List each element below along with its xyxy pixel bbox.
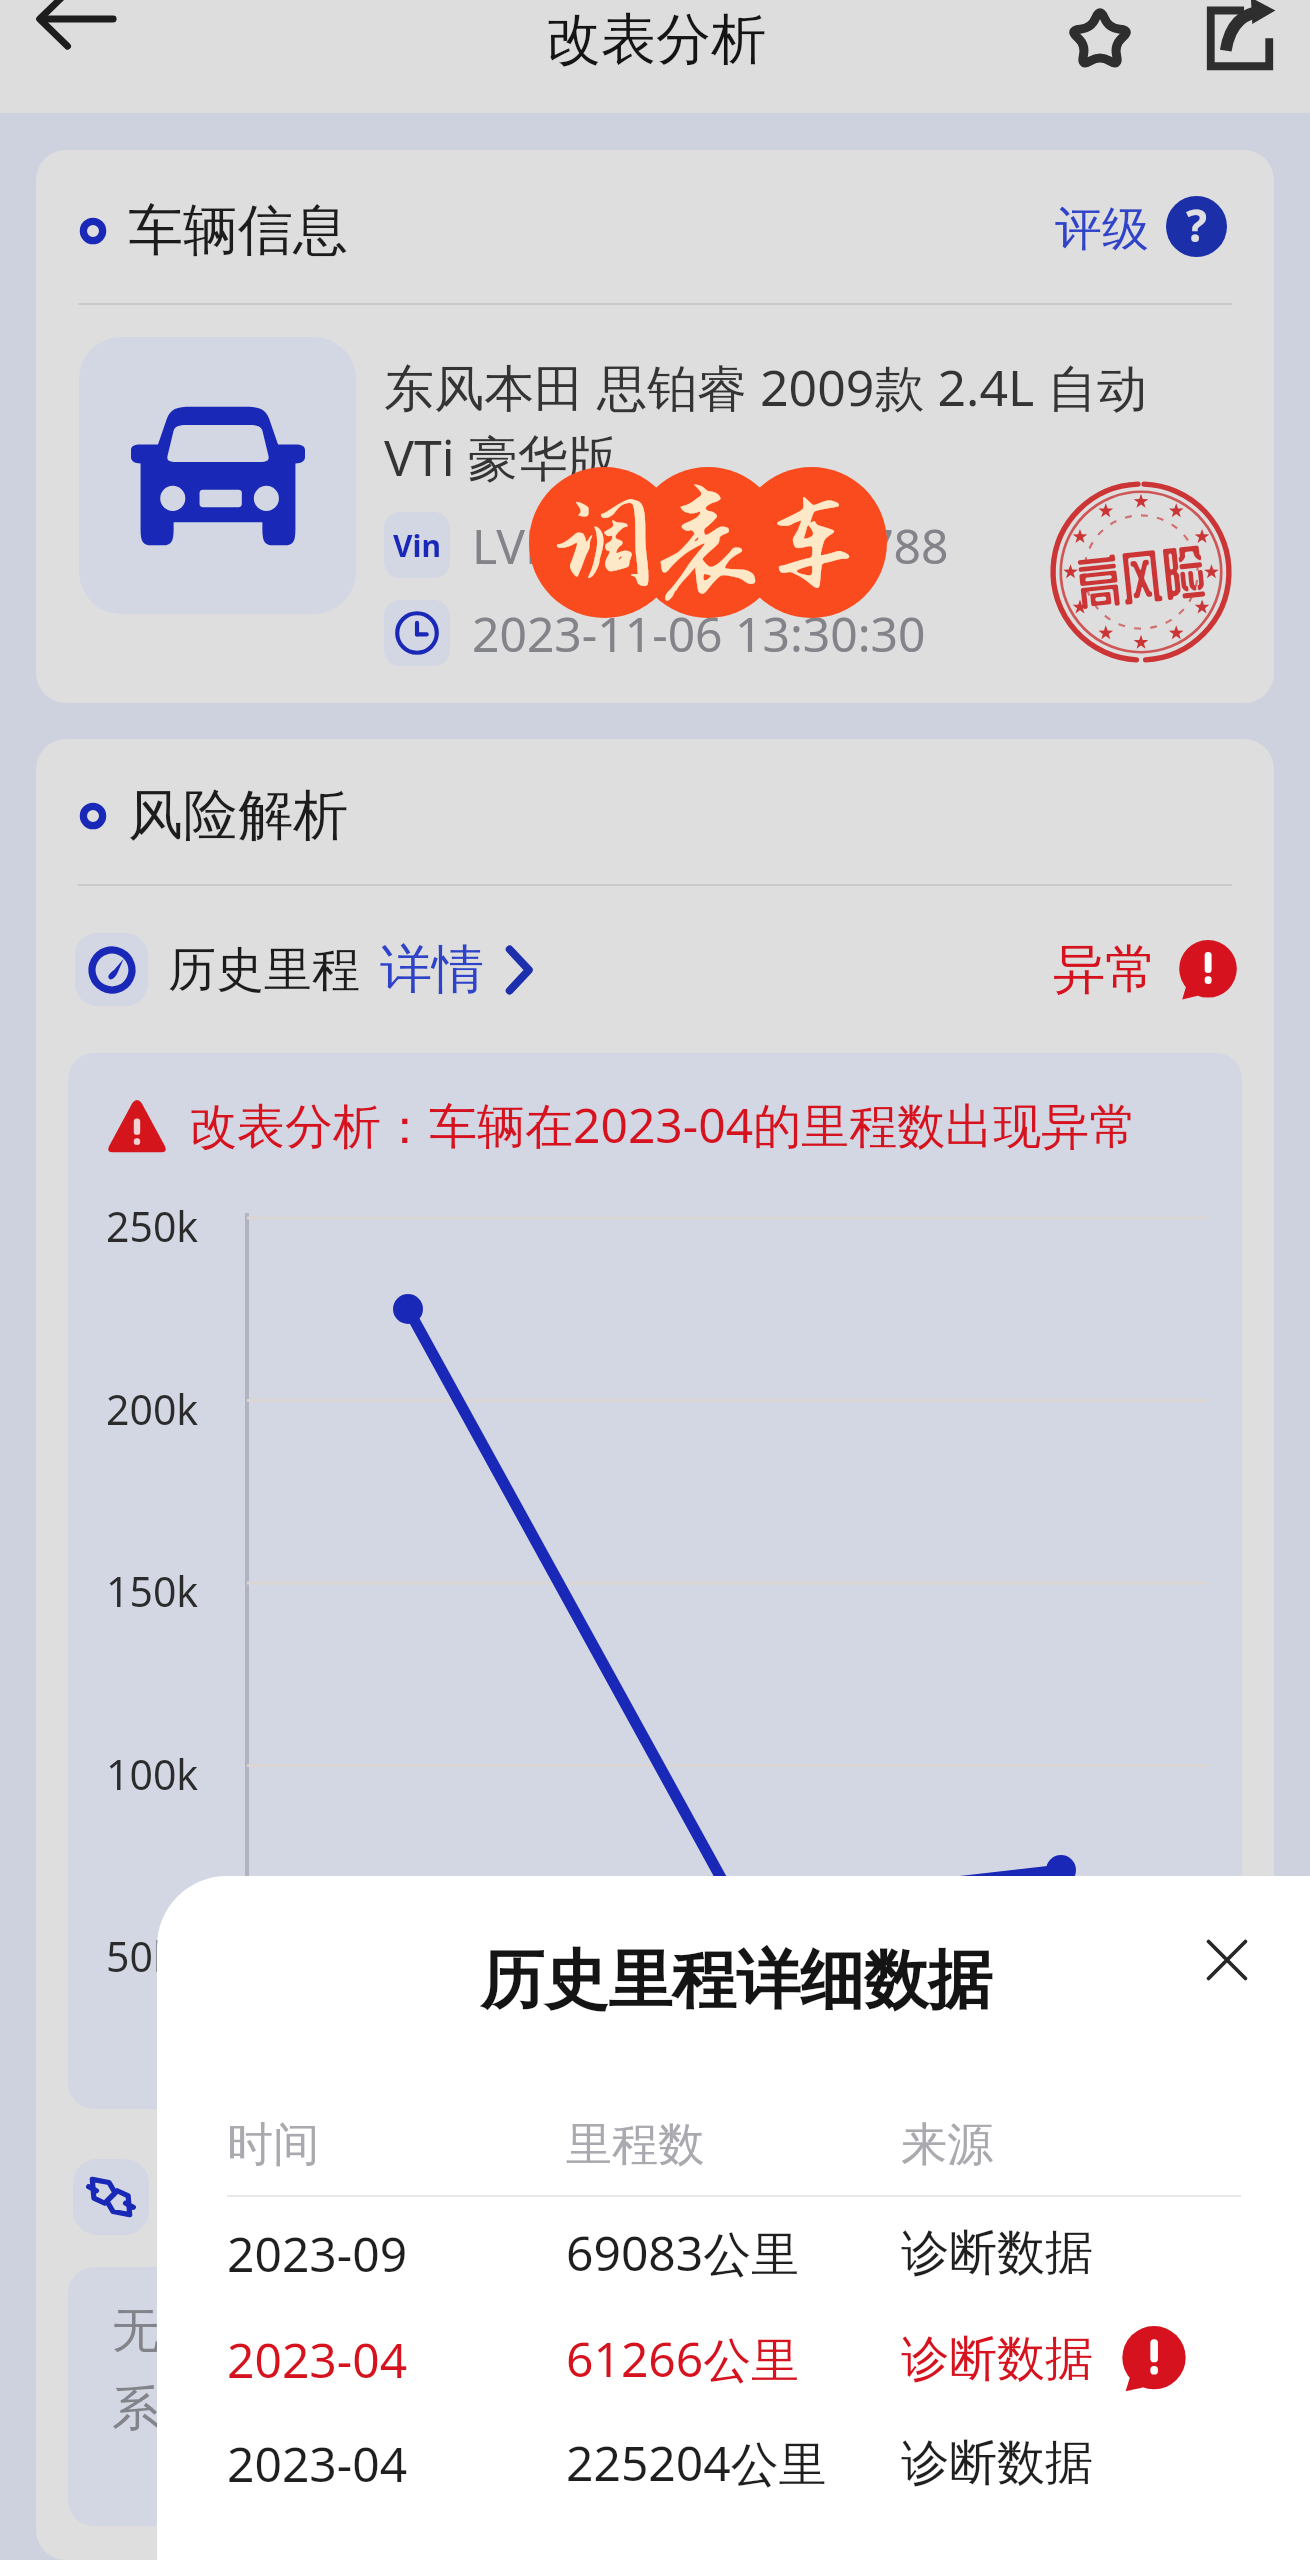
staticText: 历史里程详细数据 (480, 1940, 992, 2021)
staticText: 250k (106, 1198, 199, 1254)
button[interactable]: Close (1187, 1920, 1267, 2000)
staticText: 诊断数据 (901, 2329, 1093, 2389)
staticText: 150k (106, 1563, 199, 1619)
staticText: 时间 (227, 2116, 319, 2174)
staticText: 50k (106, 1928, 175, 1984)
button[interactable]: Back (19, 0, 129, 74)
staticText: 风险解析 (128, 781, 348, 850)
staticText: 东风本田 思铂睿 2009款 2.4L 自动 VTi 豪华版 (384, 353, 1199, 490)
staticText: 详情 (380, 937, 484, 1003)
staticText: 车辆信息 (128, 196, 348, 265)
button[interactable]: 历史里程 (36, 886, 1274, 1053)
button[interactable]: 2023-09 (157, 2200, 1310, 2306)
button[interactable]: Favorite (1045, 0, 1155, 92)
staticText: 事故分析 (169, 2167, 361, 2227)
staticText: Vin (393, 525, 441, 566)
staticText: ? (1186, 196, 1207, 255)
staticText: 61266公里 (566, 2326, 800, 2392)
button[interactable]: 事故分析 (36, 2152, 1274, 2242)
staticText: 系统未收录 (112, 2379, 352, 2439)
staticText: 来源 (901, 2116, 993, 2174)
staticText: 诊断数据 (901, 2223, 1093, 2283)
staticText: 改表分析：车辆在2023-04的里程数出现异常 (189, 1092, 1138, 1158)
staticText: 异常 (1053, 937, 1157, 1003)
button[interactable]: 评级 (1055, 196, 1227, 257)
button[interactable]: 2023-04 (157, 2306, 1310, 2412)
staticText: 225204公里 (566, 2430, 827, 2496)
staticText: 里程数 (566, 2116, 704, 2174)
button[interactable]: Share (1185, 0, 1295, 92)
staticText: 诊断数据 (901, 2433, 1093, 2493)
staticText: 改表分析 (546, 5, 766, 74)
staticText: 100k (106, 1746, 199, 1802)
staticText: 69083公里 (566, 2220, 800, 2286)
staticText: 2023-11-06 13:30:30 (472, 601, 926, 666)
button[interactable]: 2023-04 (157, 2410, 1310, 2516)
staticText: 无事故记录 (112, 2301, 352, 2361)
staticText: 历史里程 (168, 940, 360, 1000)
staticText: LVHFC1660A6032788 (472, 513, 949, 578)
staticText: 高风险 (1074, 541, 1208, 611)
staticText: 2023-04 (227, 2431, 408, 2496)
staticText: 2023-09 (227, 2221, 408, 2286)
button[interactable]: 详情 (380, 937, 532, 1003)
staticText: 调表车 (550, 486, 866, 603)
staticText: 2023-04 (227, 2327, 408, 2392)
staticText: 评级 (1055, 200, 1149, 259)
staticText: 200k (106, 1381, 199, 1437)
